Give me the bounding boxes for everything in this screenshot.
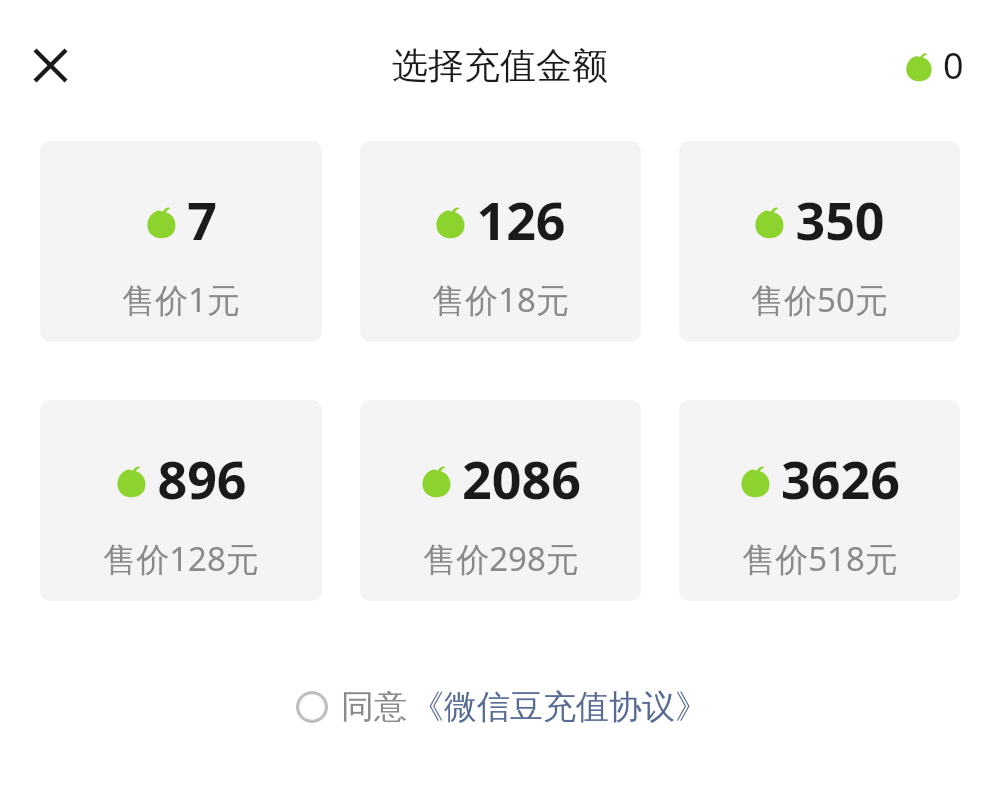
staticText: 3626 [781, 443, 900, 514]
staticText: 售价50元 [751, 277, 888, 322]
staticText: 售价1元 [122, 277, 240, 322]
staticText: 选择充值金额 [392, 43, 608, 88]
staticText: 同意 [341, 686, 407, 728]
button[interactable]: 896 [40, 400, 322, 601]
button[interactable]: 0 [905, 41, 964, 90]
button[interactable]: 《微信豆充值协议》 [411, 686, 708, 728]
staticText: 2086 [462, 443, 581, 514]
staticText: 350 [795, 184, 885, 255]
button[interactable]: 350 [679, 141, 960, 342]
button[interactable]: 2086 [360, 400, 641, 601]
staticText: 售价518元 [742, 536, 898, 581]
staticText: 售价298元 [423, 536, 579, 581]
staticText: 7 [187, 184, 217, 255]
staticText: 售价128元 [103, 536, 259, 581]
staticText: 126 [476, 184, 566, 255]
staticText: 售价18元 [432, 277, 569, 322]
button[interactable]: 126 [360, 141, 641, 342]
button[interactable]: Agree checkbox [292, 686, 411, 728]
staticText: 0 [943, 41, 964, 90]
staticText: 896 [157, 443, 247, 514]
button[interactable]: 3626 [679, 400, 960, 601]
button[interactable]: Close [16, 31, 84, 99]
other: Agree checkbox [296, 691, 328, 723]
button[interactable]: 7 [40, 141, 322, 342]
